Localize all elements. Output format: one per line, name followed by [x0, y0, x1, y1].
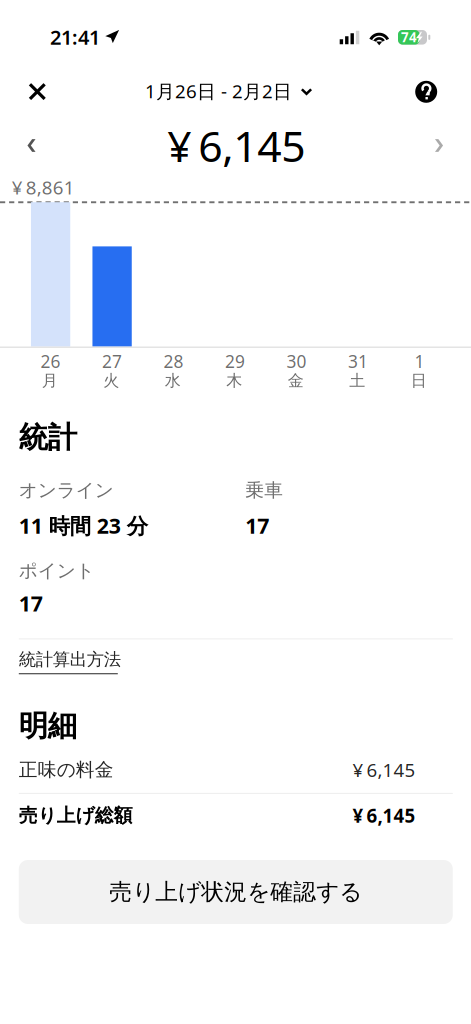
staticText: 27	[102, 350, 122, 373]
button[interactable]: Previous week	[5, 122, 57, 168]
staticText: 31	[348, 350, 368, 373]
staticText: 11 時間 23 分	[19, 511, 148, 539]
button[interactable]: Next week	[413, 122, 465, 168]
staticText: 明細	[19, 708, 77, 744]
staticText: 乗車	[245, 479, 283, 502]
staticText: 17	[245, 511, 269, 539]
staticText: 1月26日 - 2月2日	[145, 79, 292, 103]
staticText: 月	[42, 371, 58, 391]
staticText: 17	[19, 589, 43, 617]
staticText: 日	[411, 371, 427, 391]
staticText: 29	[225, 350, 245, 373]
staticText: ¥ 6,145	[352, 757, 415, 782]
button[interactable]: 売り上げ状況を確認する	[19, 860, 453, 924]
staticText: 21:41	[50, 24, 100, 50]
staticText: 水	[165, 371, 181, 391]
staticText: 木	[226, 371, 242, 391]
staticText: 土	[349, 371, 365, 391]
staticText: オンライン	[19, 479, 114, 502]
staticText: 正味の料金	[19, 758, 114, 781]
staticText: 26	[41, 350, 61, 373]
staticText: 火	[103, 371, 119, 391]
staticText: 売り上げ総額	[19, 804, 133, 827]
staticText: 金	[288, 371, 304, 391]
button[interactable]: 統計算出方法	[19, 642, 179, 682]
staticText: 売り上げ状況を確認する	[109, 878, 362, 906]
staticText: 28	[164, 350, 184, 373]
staticText: ¥ 6,145	[167, 117, 305, 174]
staticText: ¥ 8,861	[12, 175, 75, 200]
staticText: 1	[415, 350, 425, 373]
staticText: 74	[401, 28, 417, 46]
staticText: 統計算出方法	[19, 649, 121, 670]
staticText: 統計	[19, 419, 77, 455]
button[interactable]: Help	[404, 70, 448, 114]
staticText: 30	[287, 350, 307, 373]
staticText: ポイント	[19, 559, 95, 582]
staticText: ¥ 6,145	[352, 803, 415, 828]
button[interactable]: 1月26日 - 2月2日	[145, 69, 312, 113]
button[interactable]: Close	[11, 70, 63, 114]
